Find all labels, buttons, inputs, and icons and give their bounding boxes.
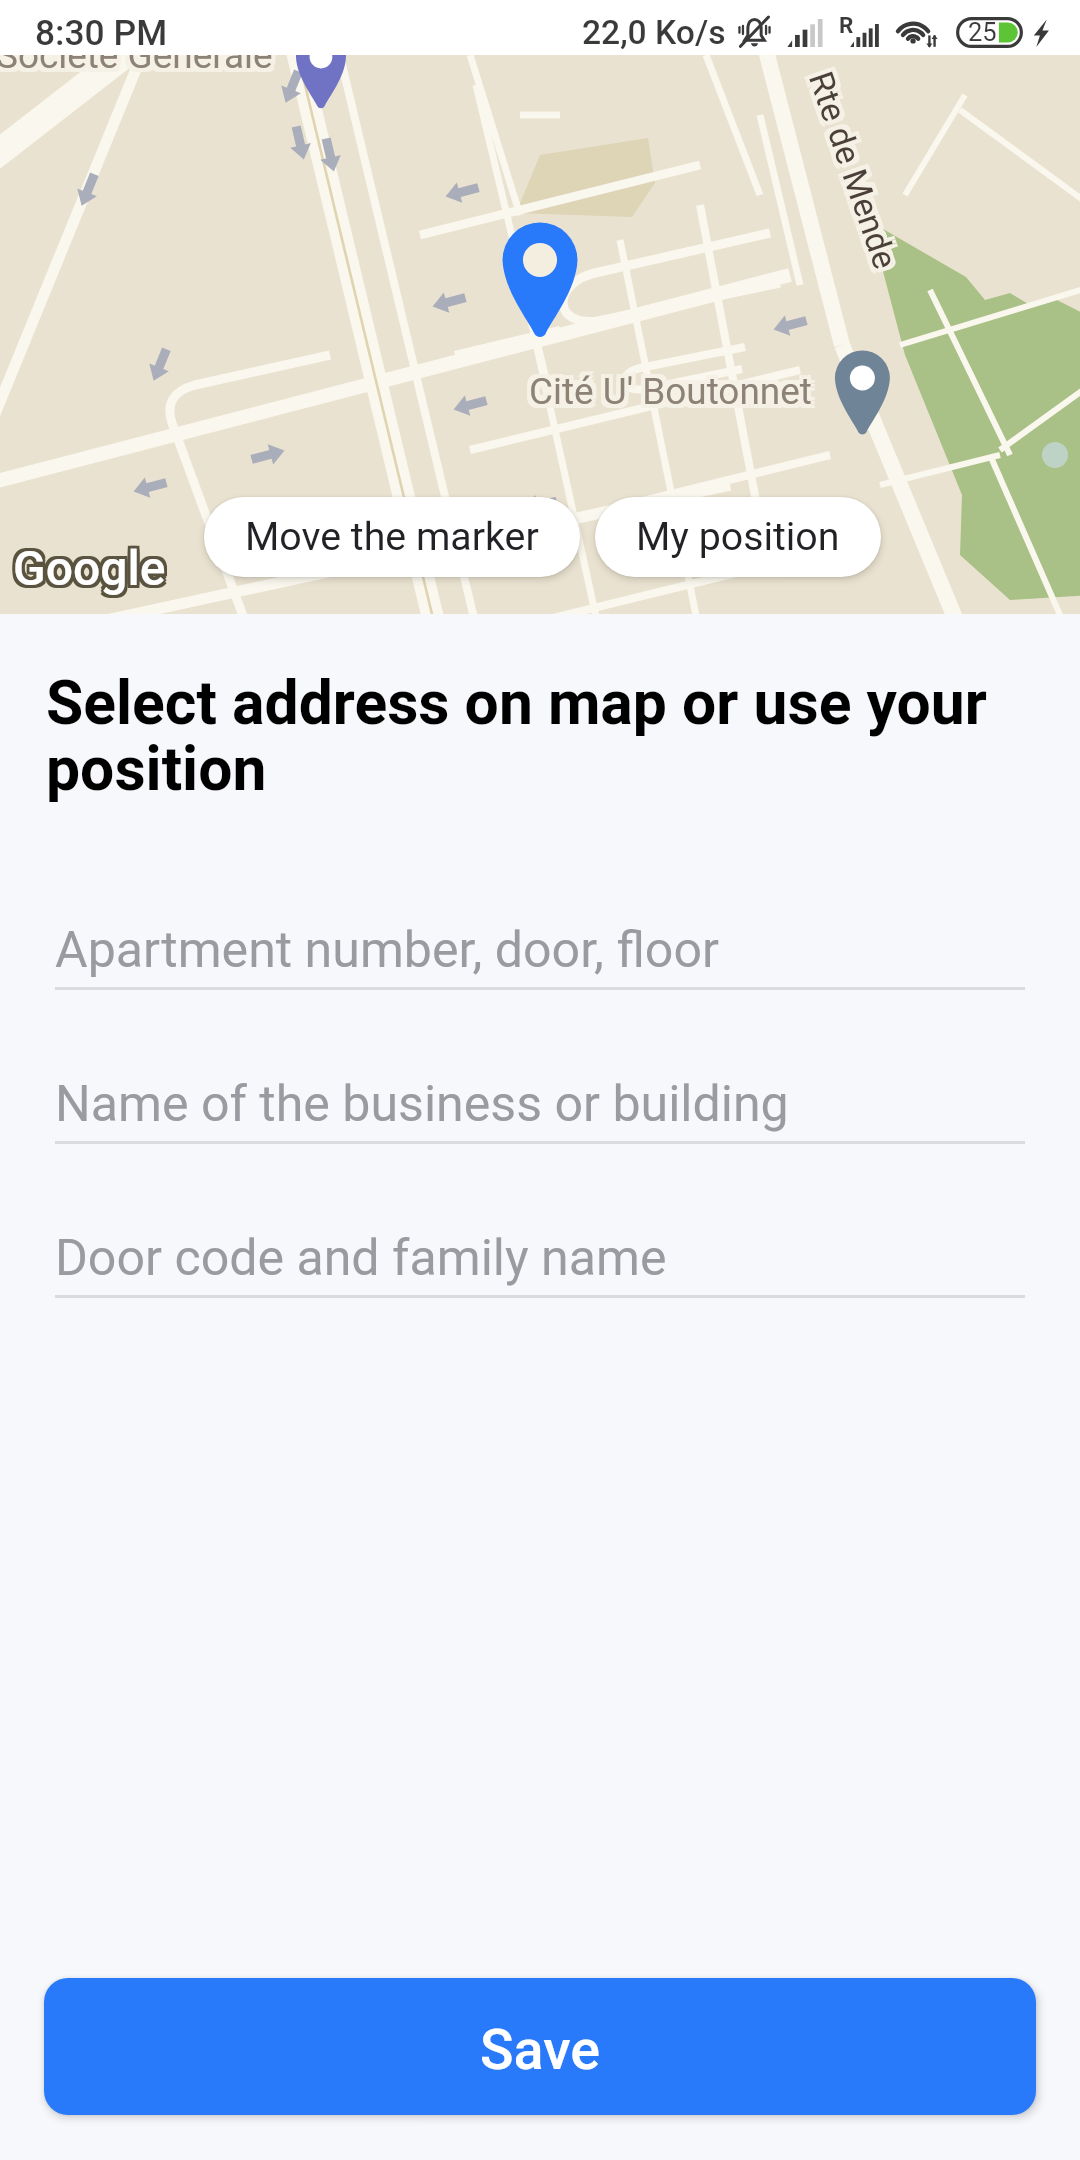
staticText: Google	[10, 540, 163, 596]
staticText: Apartment number, door, floor	[55, 921, 719, 980]
staticText: Select address on map or use your positi…	[46, 668, 1048, 805]
button[interactable]: Name of the business or building	[55, 1075, 1025, 1144]
staticText: Google	[10, 543, 163, 599]
staticText: Cité U' Boutonnet	[529, 370, 812, 413]
staticText: Cité U' Boutonnet	[529, 366, 812, 409]
staticText: Google	[10, 537, 163, 593]
staticText: Google	[16, 537, 169, 593]
staticText: Move the marker	[245, 514, 539, 560]
button[interactable]: Door code and family name	[55, 1229, 1025, 1298]
button[interactable]: Move the marker	[204, 497, 580, 577]
staticText: My position	[636, 514, 840, 560]
staticText: Cité U' Boutonnet	[525, 370, 808, 413]
staticText: Cité U' Boutonnet	[525, 374, 808, 417]
staticText: Société Générale	[0, 55, 269, 77]
staticText: Cité U' Boutonnet	[533, 370, 816, 413]
button[interactable]: My position	[595, 497, 881, 577]
button[interactable]: Apartment number, door, floor	[55, 921, 1025, 990]
staticText: Google	[13, 537, 166, 593]
staticText: Société Générale	[0, 55, 277, 77]
button[interactable]: Map, tap to choose a location	[0, 55, 1080, 614]
staticText: Rte de Mende	[797, 68, 901, 276]
staticText: Société Générale	[0, 55, 277, 81]
staticText: Rte de Mende	[806, 69, 910, 277]
staticText: Société Générale	[0, 55, 273, 81]
staticText: Google	[16, 540, 169, 596]
staticText: Name of the business or building	[55, 1075, 789, 1134]
staticText: Google	[16, 543, 169, 599]
staticText: 25	[968, 17, 997, 46]
staticText: Société Générale	[0, 55, 277, 73]
staticText: Société Générale	[0, 55, 273, 73]
staticText: Rte de Mende	[801, 67, 905, 274]
staticText: Société Générale	[0, 55, 273, 77]
staticText: Société Générale	[0, 55, 269, 81]
staticText: Société Générale	[0, 55, 269, 73]
staticText: Rte de Mende	[802, 70, 906, 278]
staticText: Google	[13, 543, 166, 599]
staticText: Door code and family name	[55, 1229, 667, 1288]
staticText: Rte de Mende	[800, 63, 904, 270]
staticText: Save	[480, 2018, 601, 2083]
staticText: 22,0 Ko/s	[582, 13, 726, 52]
staticText: Cité U' Boutonnet	[525, 366, 808, 409]
staticText: Rte de Mende	[796, 64, 900, 272]
staticText: 8:30 PM	[35, 12, 168, 53]
staticText: R	[839, 12, 854, 38]
staticText: Cité U' Boutonnet	[529, 374, 812, 417]
staticText: Cité U' Boutonnet	[533, 374, 816, 417]
staticText: Rte de Mende	[803, 62, 907, 269]
staticText: Cité U' Boutonnet	[533, 366, 816, 409]
staticText: Rte de Mende	[805, 65, 909, 273]
staticText: Google	[13, 540, 166, 596]
staticText: Rte de Mende	[798, 72, 902, 279]
button[interactable]: Save	[44, 1978, 1036, 2115]
